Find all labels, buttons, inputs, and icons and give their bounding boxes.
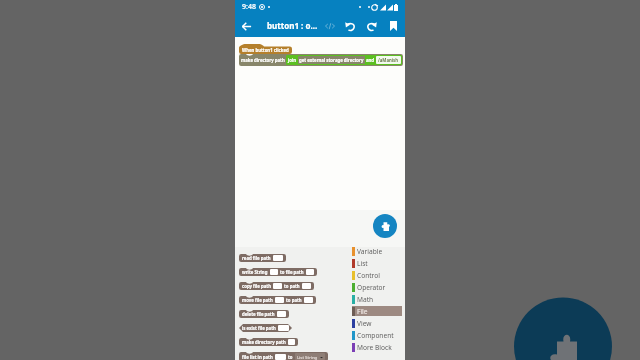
staticText: to path: [284, 283, 300, 289]
button[interactable]: Math: [352, 293, 402, 305]
button[interactable]: make directory path: [240, 55, 402, 65]
button[interactable]: Code view: [322, 18, 338, 34]
button[interactable]: is exist file path: [241, 325, 290, 331]
button[interactable]: More Block: [352, 341, 402, 353]
staticText: Math: [357, 295, 374, 304]
button[interactable]: Component: [352, 329, 402, 341]
staticText: /aManish: [378, 57, 399, 63]
button[interactable]: Control: [352, 269, 402, 281]
staticText: to: [288, 354, 293, 360]
button[interactable]: copy file path: [241, 283, 312, 289]
button[interactable]: View: [352, 317, 402, 329]
staticText: When button1 clicked: [242, 47, 289, 53]
button[interactable]: read file path: [241, 255, 284, 261]
button[interactable]: Back: [235, 15, 257, 37]
staticText: file list in path: [242, 354, 273, 360]
button[interactable]: File: [352, 305, 402, 317]
staticText: View: [357, 319, 372, 328]
staticText: copy file path: [242, 283, 271, 289]
staticText: is exist file path: [242, 325, 276, 331]
staticText: delete file path: [242, 311, 275, 317]
staticText: Operator: [357, 283, 386, 292]
staticText: join: [288, 57, 297, 63]
staticText: Component: [357, 331, 394, 340]
staticText: make directory path: [241, 57, 285, 63]
button[interactable]: Variable: [352, 245, 402, 257]
staticText: get external storage directory: [299, 57, 364, 63]
staticText: to file path: [280, 269, 304, 275]
button[interactable]: write String: [241, 269, 315, 275]
staticText: 9:48: [242, 2, 256, 12]
staticText: read file path: [242, 255, 271, 261]
button[interactable]: make directory path: [241, 339, 296, 345]
button[interactable]: Redo: [363, 18, 379, 34]
staticText: Control: [357, 271, 380, 280]
staticText: make directory path: [242, 339, 286, 345]
staticText: File: [357, 307, 368, 316]
button[interactable]: file list in path: [241, 353, 326, 360]
staticText: More Block: [357, 343, 392, 352]
staticText: List String: [297, 354, 318, 360]
button[interactable]: delete file path: [241, 311, 287, 317]
button[interactable]: List: [352, 257, 402, 269]
staticText: write String: [242, 269, 268, 275]
button[interactable]: Undo: [342, 18, 358, 34]
staticText: List: [357, 259, 368, 268]
staticText: and: [366, 57, 375, 63]
button[interactable]: Bookmark: [385, 18, 401, 34]
button[interactable]: Add block: [373, 214, 397, 238]
staticText: move file path: [242, 297, 273, 303]
staticText: to path: [286, 297, 302, 303]
button[interactable]: When button1 clicked: [242, 47, 289, 53]
button[interactable]: Operator: [352, 281, 402, 293]
button[interactable]: move file path: [241, 297, 314, 303]
staticText: button1 : o...: [267, 20, 318, 31]
staticText: Variable: [357, 247, 383, 256]
